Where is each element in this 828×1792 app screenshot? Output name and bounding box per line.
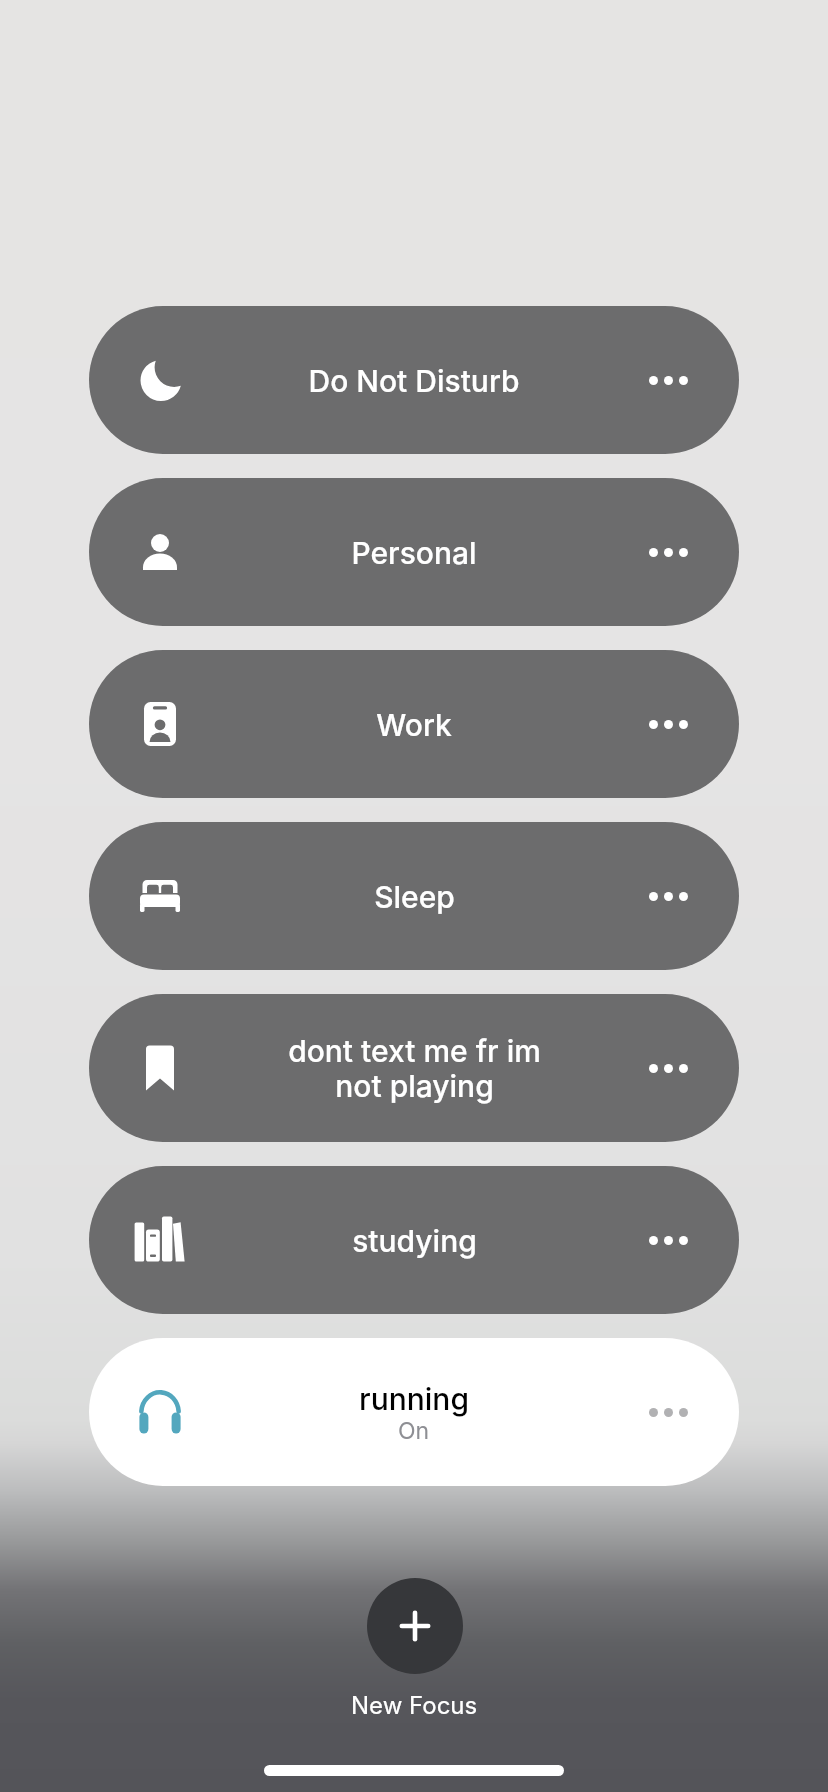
button[interactable]: More options for studying bbox=[641, 1228, 696, 1253]
button[interactable]: More options for Work bbox=[641, 712, 696, 737]
button[interactable]: Work bbox=[89, 650, 739, 798]
button[interactable]: More options for Do Not Disturb bbox=[641, 368, 696, 393]
staticText: Personal bbox=[351, 535, 477, 571]
staticText: On bbox=[398, 1417, 430, 1445]
staticText: Do Not Disturb bbox=[308, 363, 520, 399]
staticText: studying bbox=[352, 1223, 477, 1259]
button[interactable]: More options for Sleep bbox=[641, 884, 696, 909]
staticText: Sleep bbox=[374, 879, 455, 915]
staticText: New Focus bbox=[351, 1691, 478, 1720]
staticText: Work bbox=[376, 707, 452, 743]
button[interactable]: running bbox=[89, 1338, 739, 1486]
button[interactable]: Add New Focus bbox=[367, 1578, 463, 1674]
staticText: running bbox=[359, 1381, 469, 1417]
button[interactable]: Sleep bbox=[89, 822, 739, 970]
button[interactable]: More options for Personal bbox=[641, 540, 696, 565]
button[interactable]: studying bbox=[89, 1166, 739, 1314]
staticText: dont text me fr im not playing bbox=[288, 1033, 541, 1105]
button[interactable]: dont text me fr im not playing bbox=[89, 994, 739, 1142]
button[interactable]: More options for running bbox=[641, 1400, 696, 1425]
button[interactable]: Do Not Disturb bbox=[89, 306, 739, 454]
button[interactable]: More options for dont text me fr im not … bbox=[641, 1056, 696, 1081]
button[interactable]: Personal bbox=[89, 478, 739, 626]
